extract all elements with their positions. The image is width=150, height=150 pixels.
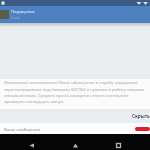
staticText: Уважаемый пользователь! Ваше обращение в…	[4, 80, 146, 104]
staticText: Поддержка	[11, 9, 35, 15]
button[interactable]: Recents	[110, 137, 127, 150]
button[interactable]: Скрыть	[129, 111, 150, 121]
staticText: в сети	[11, 16, 21, 20]
staticText: Скрыть	[132, 113, 150, 119]
staticText: Ваше сообщение	[4, 126, 41, 132]
button[interactable]: Home	[67, 137, 84, 150]
button[interactable]: Send	[135, 127, 150, 131]
button[interactable]: Поддержка	[0, 6, 150, 23]
button[interactable]: Back	[23, 137, 40, 150]
